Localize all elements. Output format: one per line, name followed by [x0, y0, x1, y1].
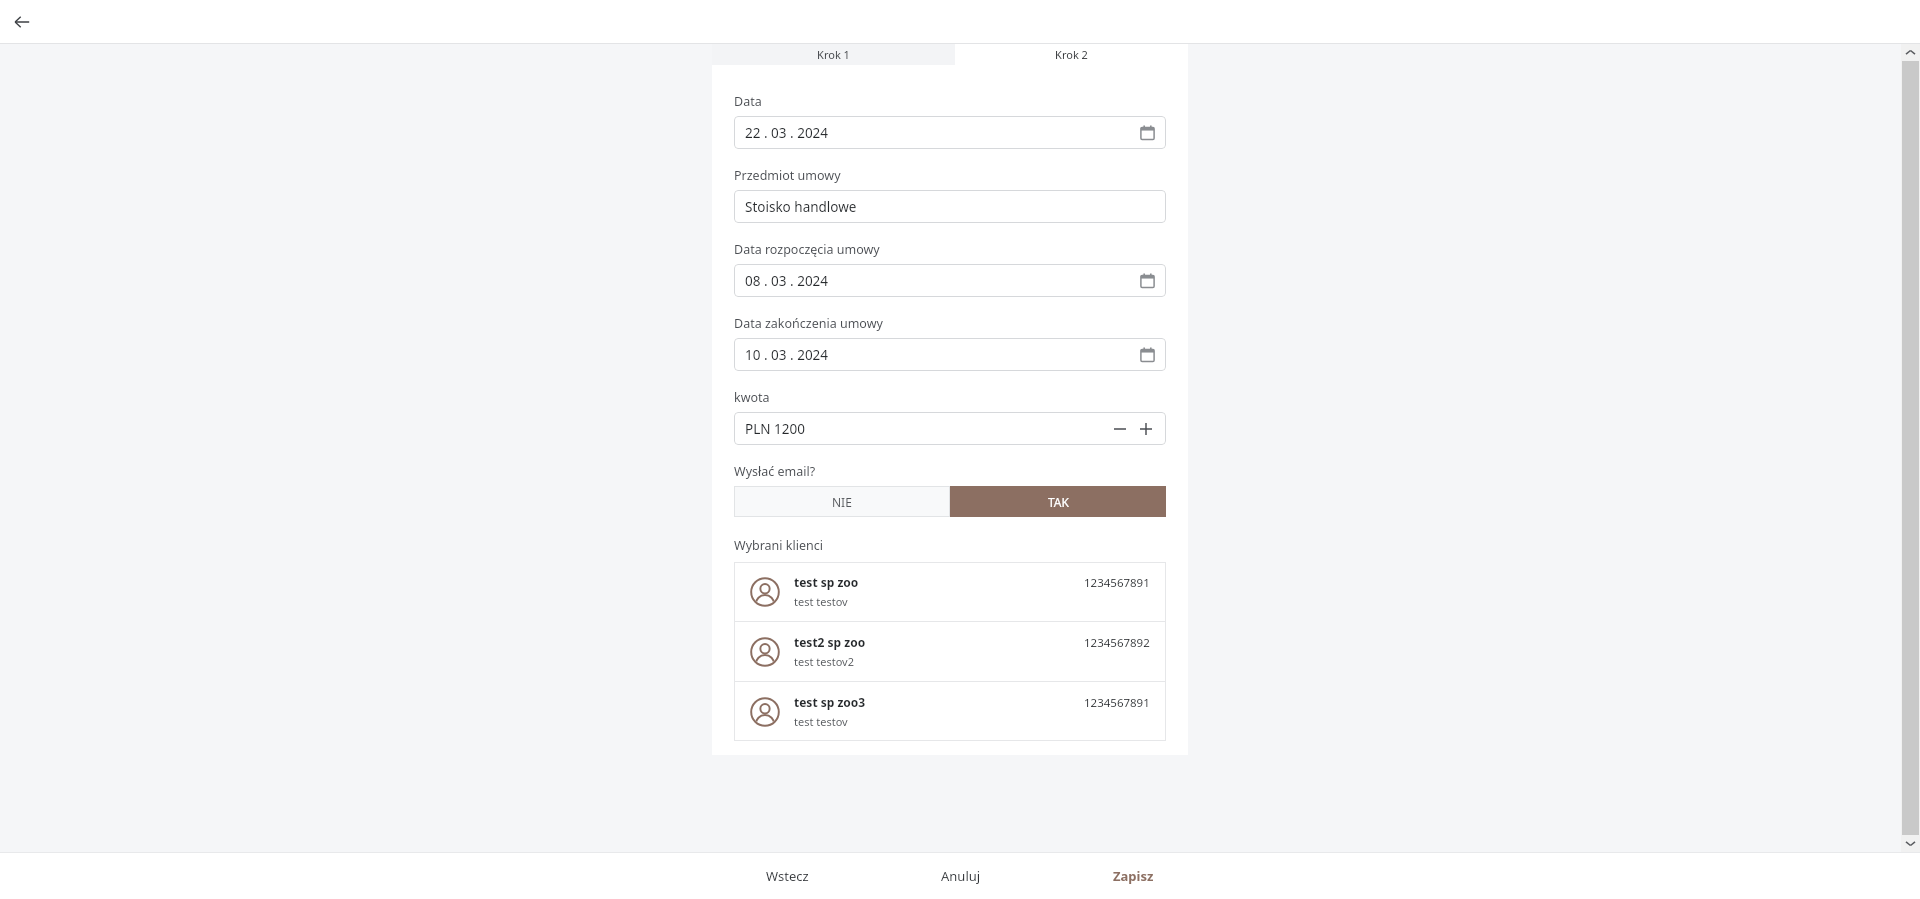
button[interactable]: Decrease amount	[1111, 420, 1129, 438]
staticText: 1234567891	[1084, 575, 1150, 591]
staticText: Zapisz	[1113, 867, 1154, 885]
button[interactable]: Anuluj	[874, 852, 1047, 899]
button[interactable]: test sp zoo3	[734, 682, 1166, 741]
button[interactable]: Stoisko handlowe	[734, 190, 1166, 223]
staticText: Stoisko handlowe	[745, 198, 857, 216]
button[interactable]: 08 . 03 . 2024	[734, 264, 1166, 297]
staticText: TAK	[1048, 494, 1069, 510]
staticText: Data	[734, 93, 762, 110]
staticText: 08 . 03 . 2024	[745, 272, 829, 290]
button[interactable]: 10 . 03 . 2024	[734, 338, 1166, 371]
staticText: test sp zoo3	[794, 694, 866, 710]
staticText: NIE	[832, 494, 852, 510]
staticText: Anuluj	[941, 867, 981, 885]
button[interactable]: test sp zoo	[734, 562, 1166, 621]
staticText: Wstecz	[766, 867, 809, 885]
button[interactable]: Wstecz	[700, 852, 874, 899]
staticText: test sp zoo	[794, 574, 859, 590]
button[interactable]: test2 sp zoo	[734, 622, 1166, 681]
staticText: test testov2	[794, 654, 855, 669]
button[interactable]: Krok 2	[955, 44, 1188, 65]
button[interactable]: Scroll down	[1901, 835, 1920, 852]
button[interactable]: Krok 1	[712, 44, 955, 65]
button[interactable]: Scroll up	[1901, 44, 1920, 61]
staticText: Przedmiot umowy	[734, 167, 841, 184]
staticText: kwota	[734, 389, 770, 406]
staticText: Krok 1	[817, 47, 850, 62]
staticText: test2 sp zoo	[794, 634, 866, 650]
staticText: 22 . 03 . 2024	[745, 124, 829, 142]
staticText: 1234567891	[1084, 695, 1150, 711]
staticText: 10 . 03 . 2024	[745, 346, 829, 364]
button[interactable]: NIE	[734, 486, 950, 517]
staticText: Wybrani klienci	[734, 537, 823, 554]
staticText: test testov	[794, 594, 848, 609]
staticText: PLN 1200	[745, 420, 805, 438]
staticText: Wysłać email?	[734, 463, 816, 480]
button[interactable]: TAK	[950, 486, 1166, 517]
staticText: test testov	[794, 714, 848, 729]
button[interactable]: Back	[6, 6, 38, 38]
staticText: Krok 2	[1055, 47, 1088, 62]
button[interactable]: 22 . 03 . 2024	[734, 116, 1166, 149]
button[interactable]: PLN 1200	[734, 412, 1166, 445]
staticText: Data rozpoczęcia umowy	[734, 241, 880, 258]
staticText: 1234567892	[1084, 635, 1150, 651]
button[interactable]: Zapisz	[1047, 852, 1220, 899]
staticText: Data zakończenia umowy	[734, 315, 883, 332]
button[interactable]: Increase amount	[1137, 420, 1155, 438]
